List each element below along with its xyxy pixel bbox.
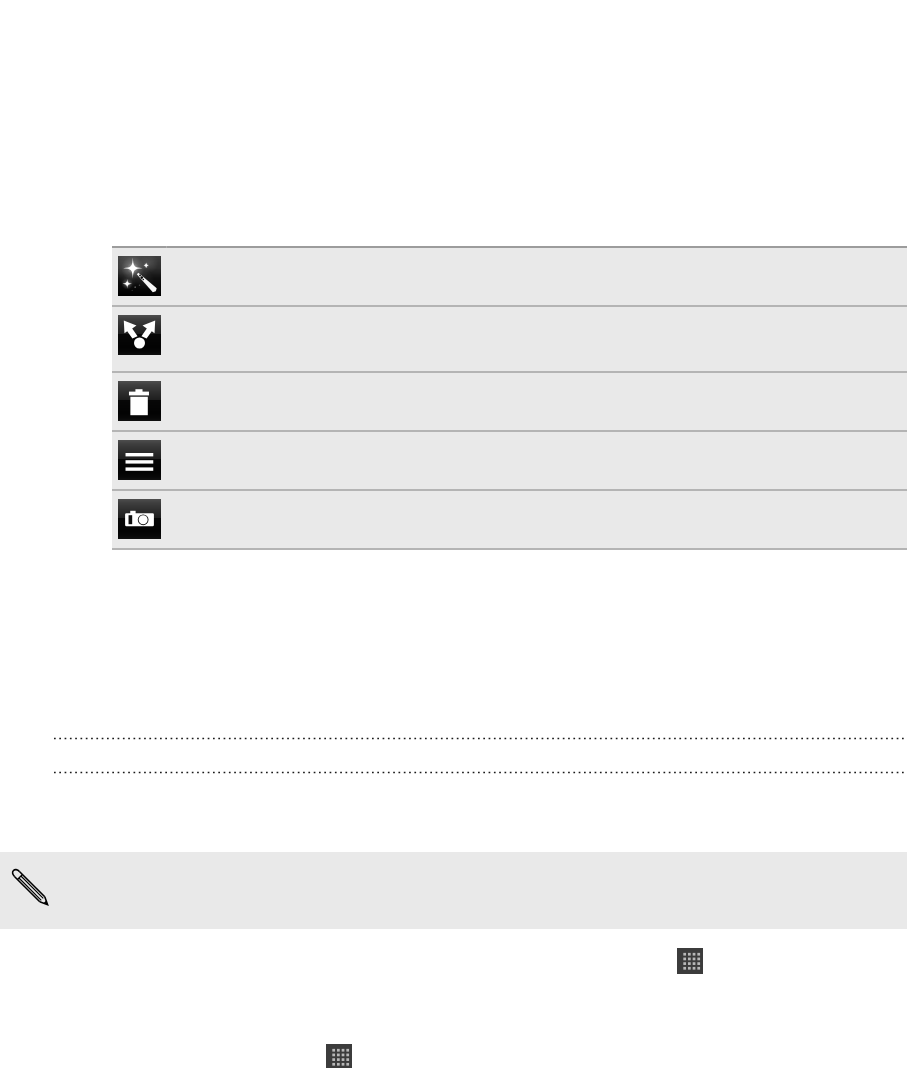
button[interactable]: More options: [112, 432, 907, 489]
button[interactable]: Effects: [112, 248, 907, 305]
button[interactable]: All apps: [677, 948, 703, 974]
button[interactable]: Camera: [112, 491, 907, 548]
button[interactable]: Share: [112, 307, 907, 371]
button[interactable]: Delete: [112, 373, 907, 430]
button[interactable]: All apps: [326, 1044, 352, 1068]
